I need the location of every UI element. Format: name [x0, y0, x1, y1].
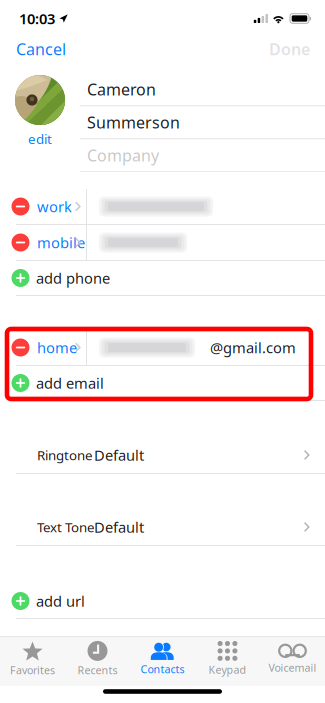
button[interactable]: Recents	[65, 636, 130, 681]
staticText: Default	[94, 517, 144, 537]
staticText: Default	[94, 445, 144, 465]
button[interactable]: add url	[0, 584, 325, 618]
staticText: home	[37, 338, 77, 357]
staticText: work	[37, 197, 72, 216]
button[interactable]: work	[0, 189, 87, 224]
staticText: Cancel	[16, 38, 66, 60]
staticText: edit	[28, 130, 52, 148]
staticText: mobile	[37, 233, 85, 252]
staticText: Done	[269, 38, 310, 60]
staticText: Favorites	[10, 663, 55, 677]
staticText: Summerson	[87, 112, 180, 133]
staticText: Contacts	[140, 662, 184, 676]
button[interactable]: Edit photo	[0, 68, 80, 172]
button[interactable]: Cancel	[0, 27, 78, 71]
button[interactable]: Voicemail	[260, 636, 325, 681]
staticText: add phone	[36, 268, 110, 288]
staticText: add email	[36, 373, 104, 393]
staticText: add url	[36, 591, 85, 611]
button[interactable]: Text Tone	[0, 509, 325, 545]
button[interactable]: Contacts	[130, 636, 195, 681]
staticText: 10:03	[19, 9, 55, 28]
staticText: Keypad	[208, 662, 246, 677]
button[interactable]: mobile	[0, 225, 87, 260]
staticText: Ringtone	[37, 446, 93, 464]
staticText: @gmail.com	[210, 338, 296, 357]
button[interactable]: Done	[257, 27, 325, 71]
button[interactable]: home	[0, 330, 87, 365]
button[interactable]: add phone	[0, 261, 325, 295]
button[interactable]: Keypad	[195, 636, 260, 681]
button[interactable]: Ringtone	[0, 437, 325, 473]
staticText: Cameron	[87, 79, 156, 100]
staticText: Recents	[77, 663, 117, 677]
staticText: Text Tone	[37, 518, 95, 536]
button[interactable]: Favorites	[0, 636, 65, 681]
staticText: Voicemail	[268, 660, 316, 675]
button[interactable]: add email	[0, 366, 325, 400]
staticText: Company	[87, 145, 159, 166]
